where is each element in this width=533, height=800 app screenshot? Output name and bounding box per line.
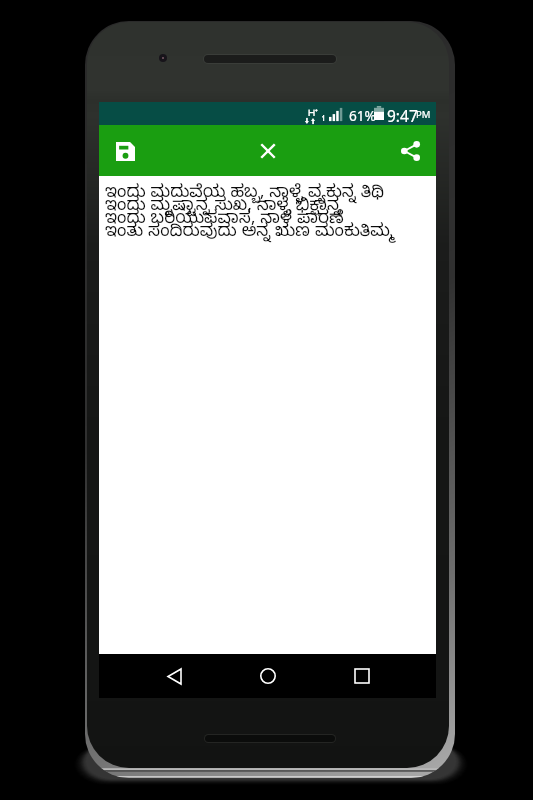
staticText: ಇಂತು ಸಂದಿರುವುದು ಅನ್ನ ಋಣ ಮಂಕುತಿಮ್ಮ (105, 222, 395, 245)
staticText: 61% (349, 106, 376, 125)
staticText: ಇಂದು ಮೃಷ್ಟಾನ್ನ ಸುಖ, ನಾಳ್ಳೆ ಭಿಕ್ಷಾನ್ನ (105, 196, 341, 219)
staticText: ಇಂದು ಮದುವೆಯ ಹಬ್ಬ, ನಾಳ್ಳೆ ವ್ಯಕುನ್ನ ತಿಥಿ (105, 183, 385, 206)
button[interactable]: Close (244, 127, 292, 175)
staticText: PM (416, 108, 431, 121)
button[interactable]: Recents (340, 654, 384, 698)
staticText: 9:47 (387, 105, 418, 126)
button[interactable]: Home (246, 654, 290, 698)
button[interactable]: Save (101, 127, 149, 175)
staticText: ಇಂದು ಬರಿಯುಪವಾಸ, ನಾಳೆ ಪಾರಣೆ (105, 209, 344, 232)
button[interactable]: Share (386, 127, 434, 175)
button[interactable]: Back (152, 654, 196, 698)
